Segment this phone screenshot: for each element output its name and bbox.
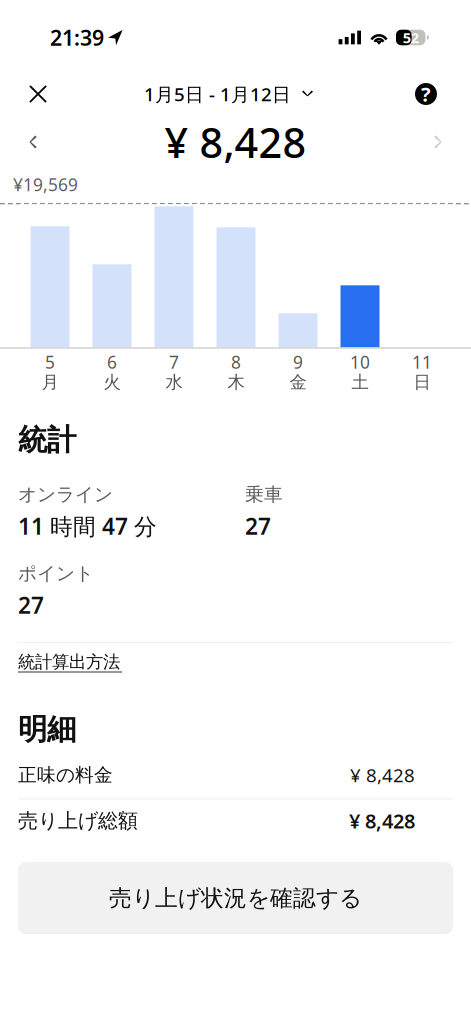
button[interactable]: Next week (407, 120, 471, 164)
staticText: 水 (165, 372, 182, 393)
staticText: 1月5日 - 1月12日 (144, 82, 291, 106)
staticText: 月 (41, 372, 58, 393)
button[interactable]: Close (0, 72, 76, 116)
staticText: 木 (227, 372, 244, 393)
staticText: 売り上げ総額 (18, 808, 138, 833)
staticText: 8 (231, 351, 241, 374)
staticText: ¥ 8,428 (164, 115, 306, 169)
staticText: ¥19,569 (13, 173, 78, 196)
staticText: 金 (289, 372, 306, 393)
staticText: 27 (18, 590, 44, 620)
button[interactable]: 統計算出方法 (18, 651, 122, 672)
staticText: 統計算出方法 (18, 651, 120, 672)
staticText: ポイント (18, 562, 94, 585)
staticText: 7 (169, 351, 179, 374)
staticText: 21:39 (50, 23, 104, 52)
staticText: 11 時間 47 分 (18, 511, 157, 541)
button[interactable]: Previous week (0, 120, 64, 164)
staticText: 火 (103, 372, 120, 393)
staticText: ¥ 8,428 (350, 762, 415, 787)
button[interactable]: 1月5日 - 1月12日 (144, 72, 313, 116)
staticText: 日 (413, 372, 430, 393)
staticText: 5 (45, 351, 55, 374)
staticText: 明細 (18, 711, 76, 747)
staticText: 11 (412, 351, 432, 374)
staticText: オンライン (18, 483, 113, 506)
button[interactable]: Help (381, 72, 471, 116)
staticText: 正味の料金 (18, 763, 113, 786)
staticText: 27 (245, 511, 271, 541)
staticText: 統計 (18, 422, 76, 458)
button[interactable]: 売り上げ状況を確認する (18, 862, 453, 934)
staticText: ¥ 8,428 (349, 807, 415, 834)
staticText: 土 (351, 372, 368, 393)
staticText: 乗車 (245, 483, 283, 506)
staticText: ? (421, 81, 431, 107)
staticText: 売り上げ状況を確認する (109, 884, 362, 912)
staticText: 9 (293, 351, 303, 374)
staticText: 6 (107, 351, 117, 374)
staticText: 52 (403, 28, 419, 47)
staticText: 10 (350, 351, 370, 374)
